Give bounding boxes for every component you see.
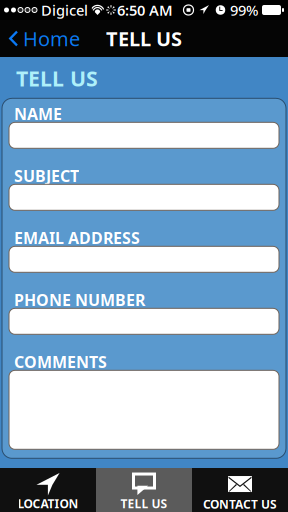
button[interactable]: CONTACT US [192, 468, 288, 512]
staticText: 99% [230, 0, 258, 20]
staticText: TELL US [120, 495, 167, 511]
staticText: COMMENTS [14, 351, 107, 372]
button[interactable]: TELL US [96, 468, 192, 512]
staticText: EMAIL ADDRESS [14, 227, 140, 248]
staticText: 6:50 AM [117, 0, 173, 20]
staticText: Digicel [41, 0, 88, 20]
staticText: PHONE NUMBER [14, 289, 145, 310]
staticText: Home [23, 25, 80, 52]
button[interactable]: Home [0, 21, 88, 55]
button[interactable] [9, 308, 279, 334]
staticText: TELL US [106, 25, 182, 52]
staticText: SUBJECT [14, 165, 79, 186]
staticText: TELL US [16, 64, 98, 92]
staticText: NAME [14, 103, 62, 124]
staticText: CONTACT US [203, 496, 277, 512]
button[interactable]: LOCATION [0, 468, 96, 512]
button[interactable] [9, 184, 279, 210]
button[interactable] [9, 246, 279, 272]
button[interactable] [9, 122, 279, 148]
staticText: LOCATION [17, 495, 78, 511]
button[interactable] [9, 370, 279, 449]
